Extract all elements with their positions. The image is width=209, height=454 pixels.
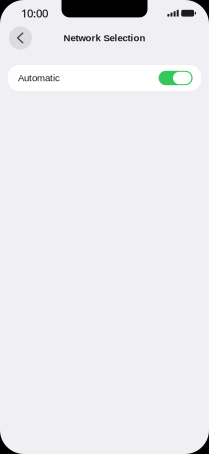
button[interactable]: Back — [9, 26, 32, 49]
staticText: Automatic — [18, 73, 60, 83]
staticText: Network Selection — [63, 33, 145, 43]
staticText: 10:00 — [21, 5, 48, 21]
button[interactable]: Automatic, on — [159, 71, 193, 85]
